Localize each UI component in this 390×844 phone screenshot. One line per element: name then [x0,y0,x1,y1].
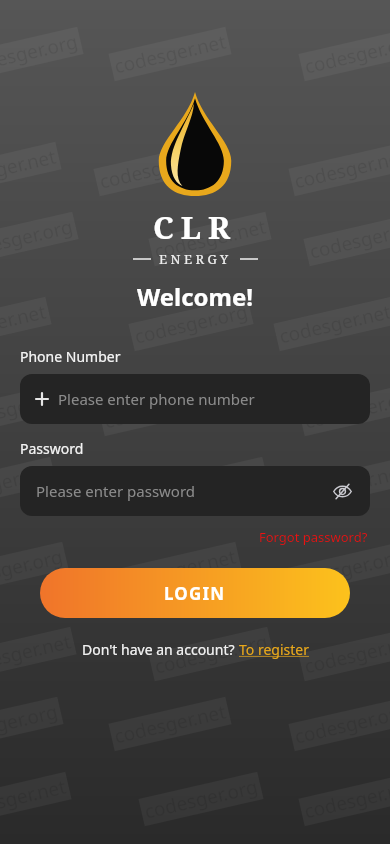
staticText: codesger.org [302,383,390,435]
staticText: codesger.org [0,383,70,435]
staticText: codesger.net [0,143,58,194]
staticText: codesger.org [0,213,75,265]
staticText: codesger.net [151,213,268,264]
staticText: Phone Number [20,347,121,366]
staticText: codesger.net [291,143,390,194]
staticText: Welcome! [137,280,254,313]
staticText: codesger.org [0,698,61,750]
staticText: codesger.org [132,298,250,350]
staticText: codesger.net [0,458,53,509]
staticText: codesger.net [301,628,390,679]
staticText: codesger.org [302,28,390,80]
staticText: ENERGY [159,250,232,268]
staticText: To register [239,640,309,659]
button[interactable]: Forgot password? [257,526,370,548]
staticText: codesger.org [97,143,215,195]
staticText: CLR [153,206,238,248]
staticText: codesger.net [291,458,390,509]
staticText: codesger.org [142,773,260,825]
staticText: codesger.org [307,213,390,265]
staticText: codesger.org [292,698,390,750]
button[interactable]: To register [239,640,309,659]
staticText: codesger.net [111,698,228,749]
staticText: Please enter password [36,481,328,501]
staticText: Please enter phone number [58,389,255,409]
button[interactable]: Please enter phone number [20,374,370,424]
staticText: LOGIN [164,582,226,605]
staticText: codesger.org [0,28,80,80]
staticText: Don't have an account? [82,640,239,659]
staticText: codesger.net [0,773,68,824]
button[interactable]: Please enter password [20,466,370,516]
staticText: codesger.net [0,298,48,349]
staticText: codesger.net [121,543,238,594]
staticText: codesger.net [301,773,390,824]
staticText: codesger.org [287,543,390,595]
staticText: codesger.org [0,543,65,595]
staticText: codesger.net [276,298,390,349]
staticText: Password [20,439,84,458]
staticText: codesger.net [101,383,218,434]
button[interactable]: Show password [328,477,356,505]
staticText: codesger.net [111,28,228,79]
staticText: codesger.net [0,628,73,679]
staticText: codesger.org [147,458,265,510]
button[interactable]: LOGIN [40,568,350,618]
staticText: codesger.org [152,628,270,680]
staticText: Forgot password? [259,528,368,546]
